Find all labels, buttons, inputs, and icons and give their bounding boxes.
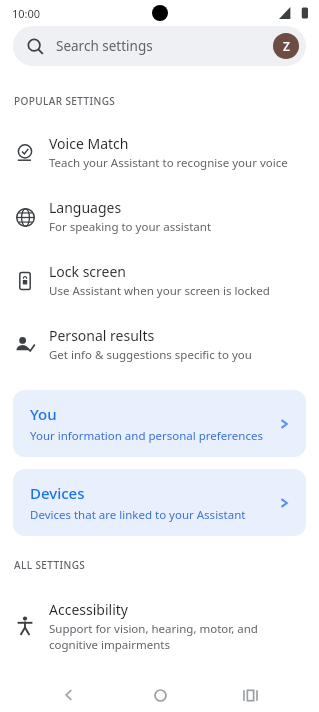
staticText: For speaking to your assistant xyxy=(49,219,212,235)
button[interactable]: Devices xyxy=(13,469,306,536)
staticText: Teach your Assistant to recognise your v… xyxy=(49,155,288,171)
staticText: Accessibility xyxy=(49,600,128,619)
button[interactable]: Search settings xyxy=(13,26,306,66)
staticText: Search settings xyxy=(56,37,153,55)
staticText: Devices xyxy=(30,483,85,503)
staticText: 10:00 xyxy=(12,6,41,21)
staticText: Get info & suggestions specific to you xyxy=(49,347,252,363)
button[interactable]: Back xyxy=(47,678,91,712)
staticText: You xyxy=(30,404,57,424)
staticText: Support for vision, hearing, motor, and … xyxy=(49,621,305,652)
staticText: Personal results xyxy=(49,326,155,345)
button[interactable]: Recent apps xyxy=(228,678,272,712)
button[interactable]: Lock screen xyxy=(0,262,319,299)
button[interactable]: Personal results xyxy=(0,326,319,363)
staticText: Voice Match xyxy=(49,134,129,153)
staticText: POPULAR SETTINGS xyxy=(14,94,116,108)
button[interactable]: Voice Match xyxy=(0,134,319,171)
staticText: Your information and personal preference… xyxy=(30,428,263,444)
staticText: Z xyxy=(283,38,290,54)
staticText: ALL SETTINGS xyxy=(14,558,86,572)
staticText: Use Assistant when your screen is locked xyxy=(49,283,270,299)
staticText: Lock screen xyxy=(49,262,127,281)
staticText: Languages xyxy=(49,198,122,217)
button[interactable]: You xyxy=(13,390,306,457)
button[interactable]: Account xyxy=(273,33,299,59)
button[interactable]: Home xyxy=(138,678,182,712)
button[interactable]: Accessibility xyxy=(0,600,319,652)
staticText: Devices that are linked to your Assistan… xyxy=(30,507,246,523)
button[interactable]: Languages xyxy=(0,198,319,235)
